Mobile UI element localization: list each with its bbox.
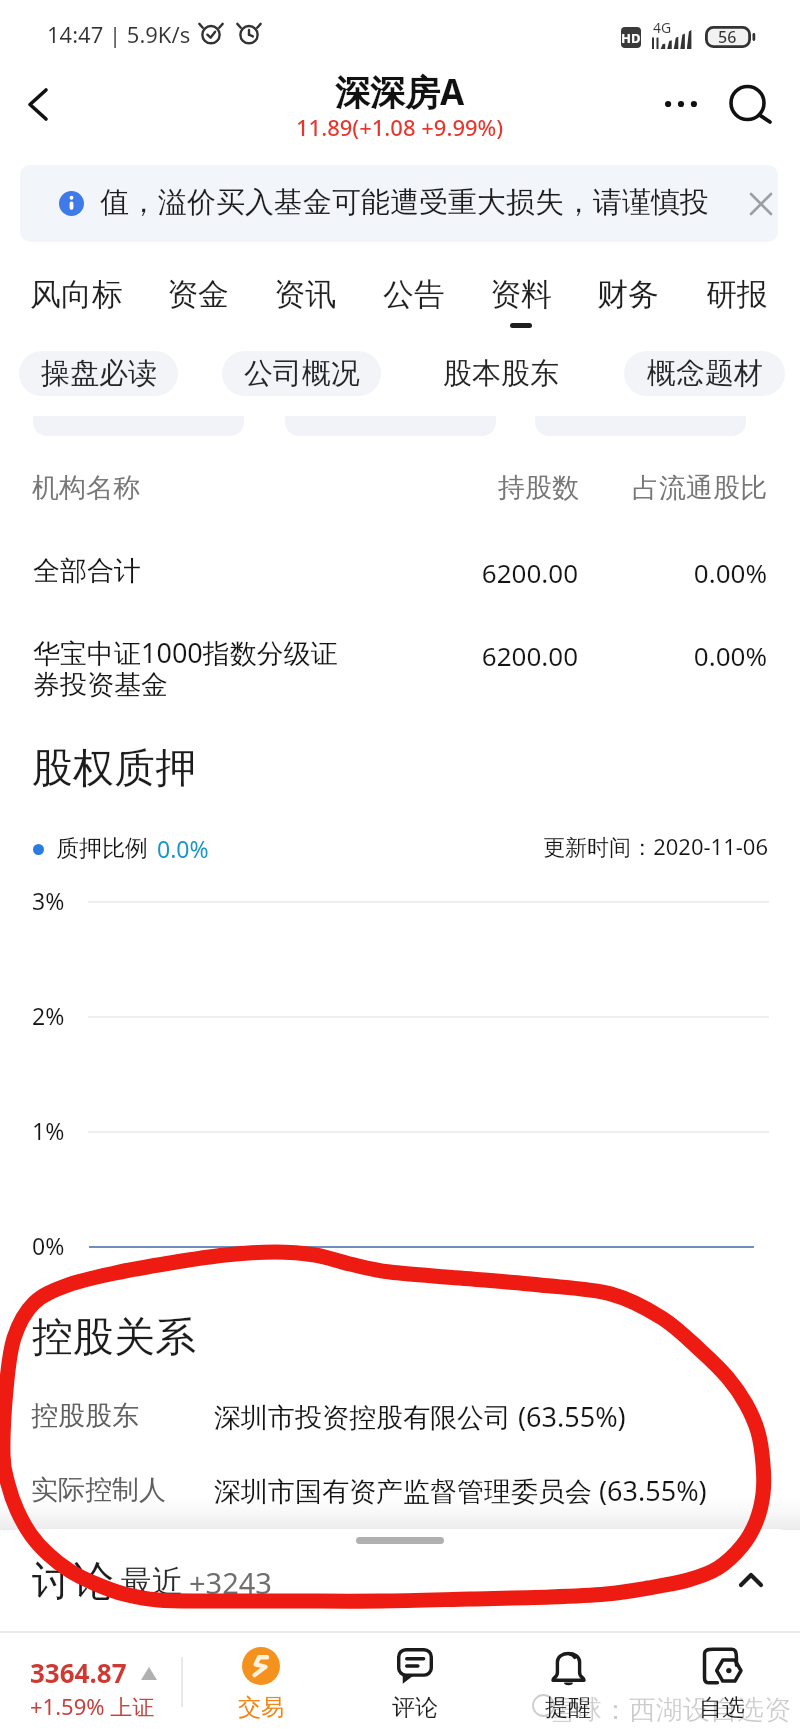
staticText: 操盘必读 [41, 355, 157, 392]
staticText: 股本股东 [443, 355, 559, 392]
staticText: 研报 [706, 275, 768, 314]
staticText: 资料 [490, 275, 552, 314]
staticText: 交易 [238, 1693, 284, 1722]
staticText: 11.89(+1.08 +9.99%) [296, 112, 504, 142]
staticText: 讨论 [32, 1556, 114, 1608]
staticText: +3243 [189, 1563, 272, 1602]
button[interactable]: 资金 [153, 261, 242, 333]
button[interactable]: 研报 [692, 261, 781, 333]
button[interactable]: 公司概况 [222, 351, 381, 396]
button[interactable]: 操盘必读 [19, 351, 178, 396]
button[interactable]: Back [4, 69, 72, 139]
staticText: 质押比例 [56, 834, 148, 863]
staticText: 机构名称 [32, 471, 140, 505]
button[interactable]: 概念题材 [624, 351, 785, 396]
staticText: 财务 [597, 275, 659, 314]
staticText: 最近 [121, 1562, 183, 1601]
staticText: 公告 [383, 275, 445, 314]
button[interactable]: 自选 [662, 1635, 782, 1729]
staticText: 控股关系 [32, 1312, 196, 1364]
staticText: 提醒 [545, 1693, 591, 1722]
staticText: 6200.00 [0, 638, 578, 673]
staticText: 14:47 | 5.9K/s [47, 19, 191, 49]
staticText: 0% [32, 1230, 65, 1261]
staticText: 3% [32, 885, 65, 916]
staticText: 深深房A [335, 68, 465, 116]
button[interactable]: Close [740, 183, 778, 225]
staticText: 评论 [392, 1693, 438, 1722]
staticText: 自选 [699, 1693, 745, 1722]
staticText: 控股股东 [31, 1399, 139, 1433]
button[interactable]: 提醒 [508, 1635, 628, 1729]
staticText: 6200.00 [0, 555, 578, 590]
staticText: 概念题材 [647, 355, 763, 392]
staticText: 0.0% [157, 833, 209, 864]
button[interactable]: 3364.87 [8, 1637, 180, 1727]
staticText: 资讯 [274, 275, 336, 314]
button[interactable]: More options [648, 72, 714, 136]
staticText: 股权质押 [32, 743, 196, 795]
button[interactable]: 公告 [369, 261, 458, 333]
button[interactable]: 评论 [355, 1635, 475, 1729]
button[interactable]: 风向标 [18, 261, 134, 333]
staticText: 资金 [167, 275, 229, 314]
button[interactable]: 股本股东 [421, 351, 580, 396]
button[interactable]: Search [716, 70, 786, 136]
staticText: 0.00% [0, 638, 767, 673]
staticText: 持股数 [0, 471, 579, 505]
staticText: 4G [653, 18, 672, 37]
staticText: 深圳市国有资产监督管理委员会 (63.55%) [214, 1472, 707, 1509]
button[interactable]: 资料 [476, 261, 565, 333]
staticText: 风向标 [30, 275, 123, 314]
staticText: 3364.87 [30, 1655, 127, 1690]
staticText: 56 [718, 26, 737, 48]
staticText: 公司概况 [244, 355, 360, 392]
staticText: 深圳市投资控股有限公司 (63.55%) [214, 1398, 626, 1435]
button[interactable]: 资讯 [260, 261, 349, 333]
staticText: 雪球：西湖设自选资 [548, 1693, 791, 1727]
staticText: 占流通股比 [0, 471, 767, 505]
staticText: 0.00% [0, 555, 767, 590]
button[interactable]: 财务 [583, 261, 672, 333]
staticText: 1% [32, 1115, 65, 1146]
staticText: 更新时间：2020-11-06 [0, 831, 768, 861]
staticText: 实际控制人 [31, 1473, 166, 1507]
staticText: HD [621, 29, 641, 47]
button[interactable]: 交易 [201, 1635, 321, 1729]
staticText: 值，溢价买入基金可能遭受重大损失，请谨慎投资 [100, 184, 722, 221]
button[interactable]: Expand discussion [723, 1552, 779, 1608]
staticText: +1.59% 上证 [30, 1691, 155, 1721]
staticText: 2% [32, 1000, 65, 1031]
staticText: 全部合计 [33, 554, 141, 588]
staticText: 华宝中证1000指数分级证券投资基金 [33, 634, 345, 702]
button[interactable]: 值，溢价买入基金可能遭受重大损失，请谨慎投资 [20, 165, 778, 242]
